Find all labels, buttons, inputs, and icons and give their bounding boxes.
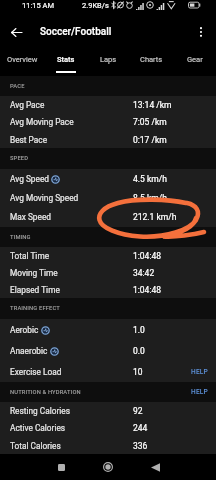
staticText: Gear — [187, 55, 203, 64]
staticText: Total Time — [10, 251, 50, 261]
staticText: TRAINING EFFECT — [10, 305, 60, 312]
button[interactable]: Aerobic — [0, 319, 216, 340]
staticText: 1:04:48 — [133, 251, 162, 261]
button[interactable]: Overview — [0, 48, 44, 76]
staticText: 2.9KB/s — [82, 1, 109, 10]
staticText: Aerobic — [10, 325, 39, 335]
staticText: Exercise Load — [10, 367, 62, 377]
staticText: Avg Speed — [10, 174, 49, 184]
staticText: 92 — [133, 406, 143, 416]
button[interactable]: Charts — [130, 48, 173, 76]
button[interactable]: Best Pace — [0, 131, 216, 148]
staticText: 0.0 — [133, 346, 145, 356]
button[interactable]: Anaerobic — [0, 340, 216, 361]
staticText: 1.0 — [133, 325, 145, 335]
staticText: 4.5 km/h — [133, 174, 167, 184]
button[interactable]: Home — [95, 454, 121, 480]
staticText: HELP — [191, 388, 209, 396]
staticText: Max Speed — [10, 212, 51, 222]
button[interactable]: Back — [0, 16, 32, 48]
button[interactable]: Stats — [44, 48, 87, 76]
staticText: 34:42 — [133, 268, 155, 278]
staticText: Overview — [7, 55, 38, 64]
staticText: Stats — [57, 55, 75, 64]
button[interactable]: Moving Time — [0, 264, 216, 281]
staticText: Laps — [100, 55, 117, 64]
button[interactable]: Gear — [173, 48, 216, 76]
staticText: 7:05 /km — [133, 117, 167, 127]
button[interactable]: Active Calories — [0, 419, 216, 437]
staticText: Resting Calories — [10, 406, 70, 416]
staticText: Elapsed Time — [10, 285, 60, 295]
staticText: 13:14 /km — [133, 100, 172, 110]
button[interactable]: Total Calories — [0, 437, 216, 454]
staticText: 8.5 km/h — [133, 193, 167, 203]
button[interactable]: HELP — [184, 388, 216, 396]
staticText: 212.1 km/h — [133, 212, 177, 222]
staticText: 0:17 /km — [133, 135, 167, 145]
button[interactable]: Avg Pace — [0, 96, 216, 113]
button[interactable]: More options — [186, 16, 216, 48]
staticText: 10 — [133, 367, 143, 377]
button[interactable]: Back — [142, 454, 168, 480]
staticText: Moving Time — [10, 268, 58, 278]
staticText: Avg Moving Speed — [10, 193, 79, 203]
button[interactable]: Avg Speed — [0, 169, 216, 188]
staticText: Avg Pace — [10, 100, 45, 110]
staticText: SPEED — [10, 155, 29, 162]
button[interactable]: Resting Calories — [0, 402, 216, 419]
staticText: 11:15 AM — [22, 1, 54, 10]
button[interactable]: Avg Moving Pace — [0, 113, 216, 131]
button[interactable]: Exercise Load — [0, 361, 216, 382]
staticText: NUTRITION & HYDRATION — [10, 389, 81, 396]
staticText: Charts — [140, 55, 163, 64]
button[interactable]: Total Time — [0, 247, 216, 264]
staticText: Total Calories — [10, 441, 61, 451]
button[interactable]: Elapsed Time — [0, 281, 216, 298]
button[interactable]: Max Speed — [0, 207, 216, 227]
staticText: Active Calories — [10, 423, 66, 433]
staticText: 336 — [133, 441, 148, 451]
staticText: Soccer/Football — [40, 26, 112, 38]
staticText: PACE — [10, 83, 25, 90]
staticText: 244 — [133, 423, 148, 433]
button[interactable]: Laps — [87, 48, 130, 76]
staticText: Anaerobic — [10, 346, 48, 356]
button[interactable]: Avg Moving Speed — [0, 188, 216, 207]
button[interactable]: Recents — [48, 454, 74, 480]
staticText: 1:04:48 — [133, 285, 162, 295]
staticText: Avg Moving Pace — [10, 117, 74, 127]
staticText: TIMING — [10, 234, 31, 241]
staticText: HELP — [191, 368, 209, 376]
staticText: Best Pace — [10, 135, 48, 145]
